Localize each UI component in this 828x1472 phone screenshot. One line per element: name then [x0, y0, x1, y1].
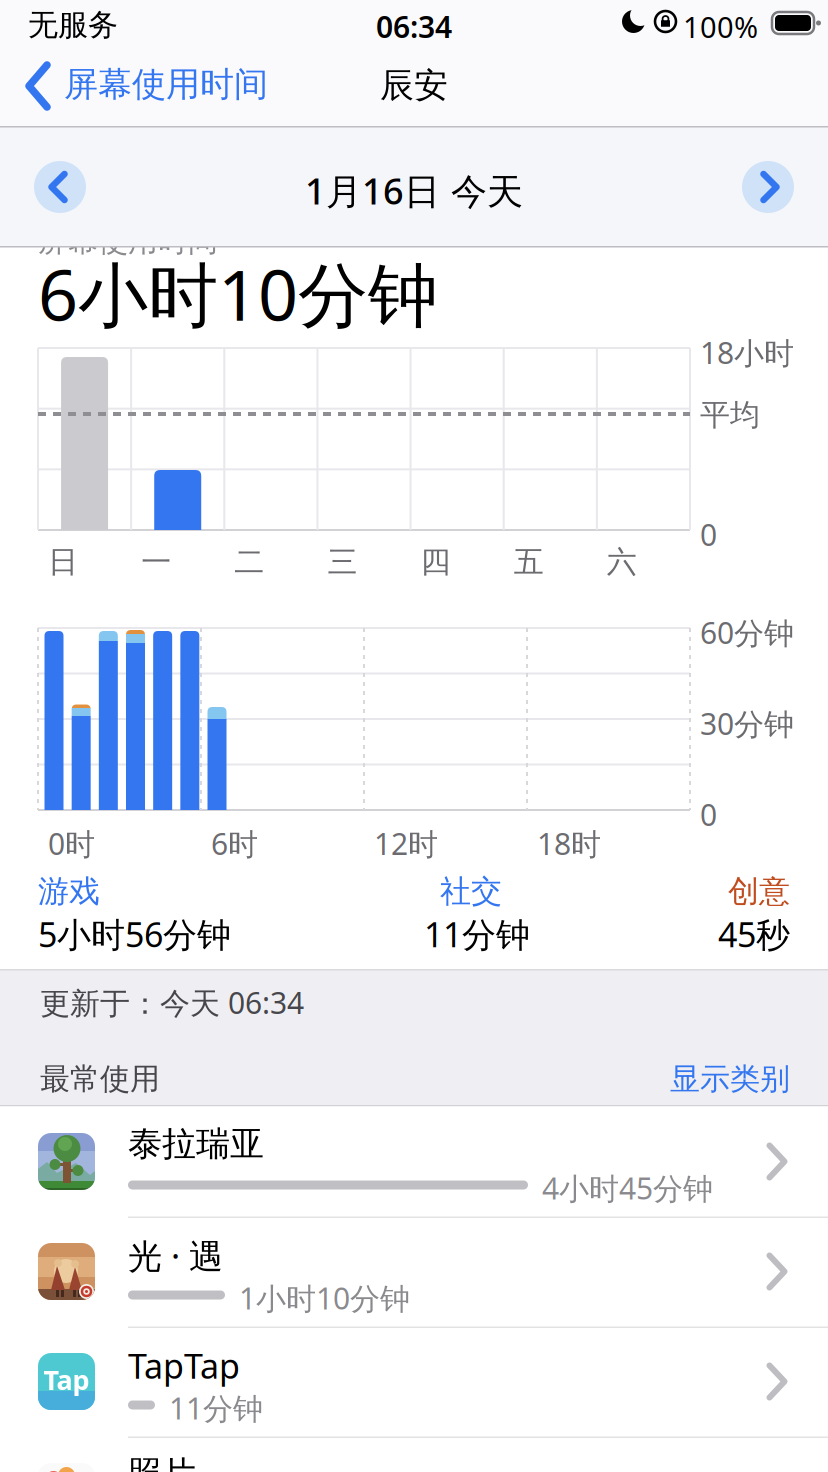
staticText: 社交	[440, 872, 502, 911]
staticText: 更新于：今天 06:34	[40, 982, 304, 1023]
staticText: 照片	[128, 1452, 196, 1472]
staticText: 06:34	[376, 6, 452, 47]
staticText: 60分钟	[700, 612, 794, 653]
staticText: 1月16日 今天	[305, 166, 523, 215]
staticText: 游戏	[38, 872, 100, 911]
staticText: 5小时56分钟	[38, 911, 231, 957]
staticText: 30分钟	[700, 703, 794, 744]
staticText: 六	[607, 543, 637, 581]
staticText: 五	[514, 543, 544, 581]
staticText: 辰安	[380, 64, 448, 107]
staticText: 18时	[537, 823, 601, 864]
staticText: 显示类别	[670, 1060, 790, 1098]
staticText: 创意	[728, 872, 790, 911]
button[interactable]: 光 · 遇	[0, 1216, 828, 1326]
staticText: TapTap	[128, 1342, 240, 1389]
button[interactable]: 创意	[38, 872, 790, 911]
staticText: 12时	[374, 823, 438, 864]
staticText: 四	[421, 543, 451, 581]
staticText: 6小时10分钟	[38, 246, 438, 341]
staticText: 光 · 遇	[128, 1232, 223, 1279]
button[interactable]: 前一天	[34, 161, 86, 213]
staticText: 45秒	[718, 911, 790, 957]
staticText: 100%	[683, 7, 758, 46]
button[interactable]: 泰拉瑞亚	[0, 1106, 828, 1216]
staticText: 0	[700, 514, 717, 555]
staticText: 11分钟	[424, 911, 530, 957]
staticText: 11分钟	[169, 1387, 263, 1428]
staticText: 4小时45分钟	[542, 1167, 713, 1208]
staticText: 0	[700, 794, 717, 835]
button[interactable]: 屏幕使用时间	[18, 62, 308, 110]
staticText: 三	[327, 543, 357, 581]
staticText: 6时	[211, 823, 258, 864]
staticText: 屏幕使用时间	[64, 63, 268, 106]
button[interactable]: Tap	[0, 1326, 828, 1436]
staticText: 0时	[48, 823, 95, 864]
staticText: 平均	[700, 396, 760, 434]
button[interactable]: 社交	[440, 872, 502, 911]
staticText: Tap	[43, 1361, 89, 1398]
staticText: 二	[234, 543, 264, 581]
button[interactable]: 照片	[0, 1436, 828, 1472]
staticText: 日	[48, 543, 78, 581]
button[interactable]: 游戏	[38, 872, 100, 911]
staticText: 屏幕使用时间	[38, 222, 218, 260]
staticText: 一	[141, 543, 171, 581]
staticText: 无服务	[28, 6, 118, 44]
staticText: 1小时10分钟	[239, 1277, 410, 1318]
button[interactable]: 显示类别	[38, 1060, 790, 1098]
staticText: 18小时	[700, 332, 794, 373]
staticText: 最常使用	[40, 1060, 160, 1098]
staticText: 泰拉瑞亚	[128, 1122, 264, 1165]
button[interactable]: 后一天	[742, 161, 794, 213]
